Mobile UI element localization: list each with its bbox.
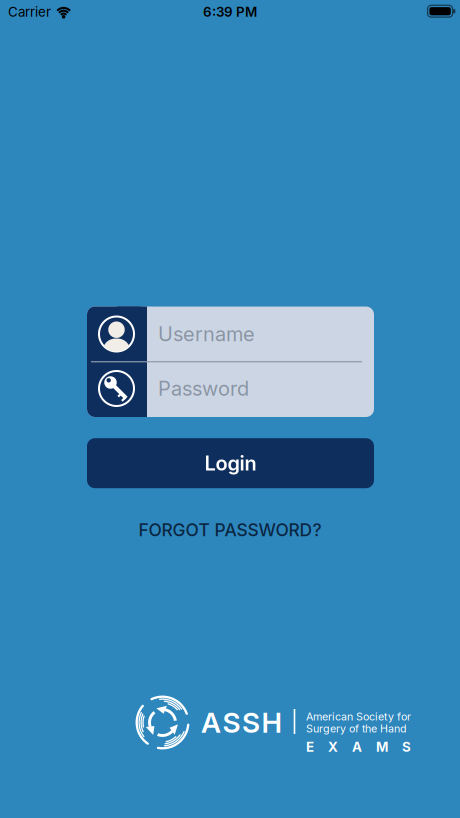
- staticText: Login: [204, 451, 256, 475]
- staticText: Password: [158, 377, 249, 400]
- button[interactable]: FORGOT PASSWORD?: [138, 520, 321, 540]
- staticText: Surgery of the Hand: [306, 722, 407, 735]
- button[interactable]: Username: [147, 307, 374, 361]
- staticText: Carrier: [8, 4, 51, 20]
- button[interactable]: Password: [147, 361, 374, 415]
- staticText: Username: [158, 322, 255, 346]
- button[interactable]: Login: [87, 438, 374, 488]
- staticText: EXAMS: [306, 739, 411, 755]
- staticText: American Society for: [306, 710, 411, 723]
- staticText: 6:39 PM: [203, 4, 257, 20]
- staticText: ASSH: [201, 706, 282, 739]
- staticText: FORGOT PASSWORD?: [138, 520, 321, 540]
